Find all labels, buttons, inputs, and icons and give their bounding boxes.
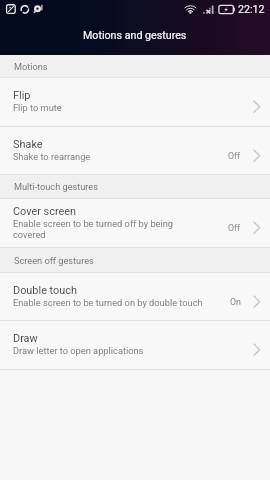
staticText: Draw <box>13 332 38 345</box>
staticText: 22:12 <box>238 3 265 16</box>
button[interactable]: Cover screen <box>0 199 270 247</box>
staticText: Off <box>228 151 241 161</box>
staticText: Motions and gestures <box>83 29 187 42</box>
staticText: Double touch <box>13 284 77 297</box>
staticText: Cover screen <box>13 205 77 218</box>
staticText: Enable screen to be turned off by being … <box>13 218 206 240</box>
staticText: Shake <box>13 138 43 151</box>
staticText: Multi-touch gestures <box>14 181 98 192</box>
staticText: Shake to rearrange <box>13 151 91 162</box>
staticText: Screen off gestures <box>14 255 94 266</box>
staticText: Draw letter to open applications <box>13 345 144 356</box>
button[interactable]: Shake <box>0 127 270 174</box>
staticText: Flip to mute <box>13 102 62 113</box>
staticText: Flip <box>13 89 31 102</box>
staticText: Off <box>228 223 241 233</box>
staticText: Motions <box>14 61 48 72</box>
staticText: On <box>230 297 241 307</box>
button[interactable]: Flip <box>0 78 270 126</box>
button[interactable]: Draw <box>0 321 270 369</box>
staticText: Enable screen to be turned on by double … <box>13 297 203 308</box>
button[interactable]: Double touch <box>0 273 270 320</box>
